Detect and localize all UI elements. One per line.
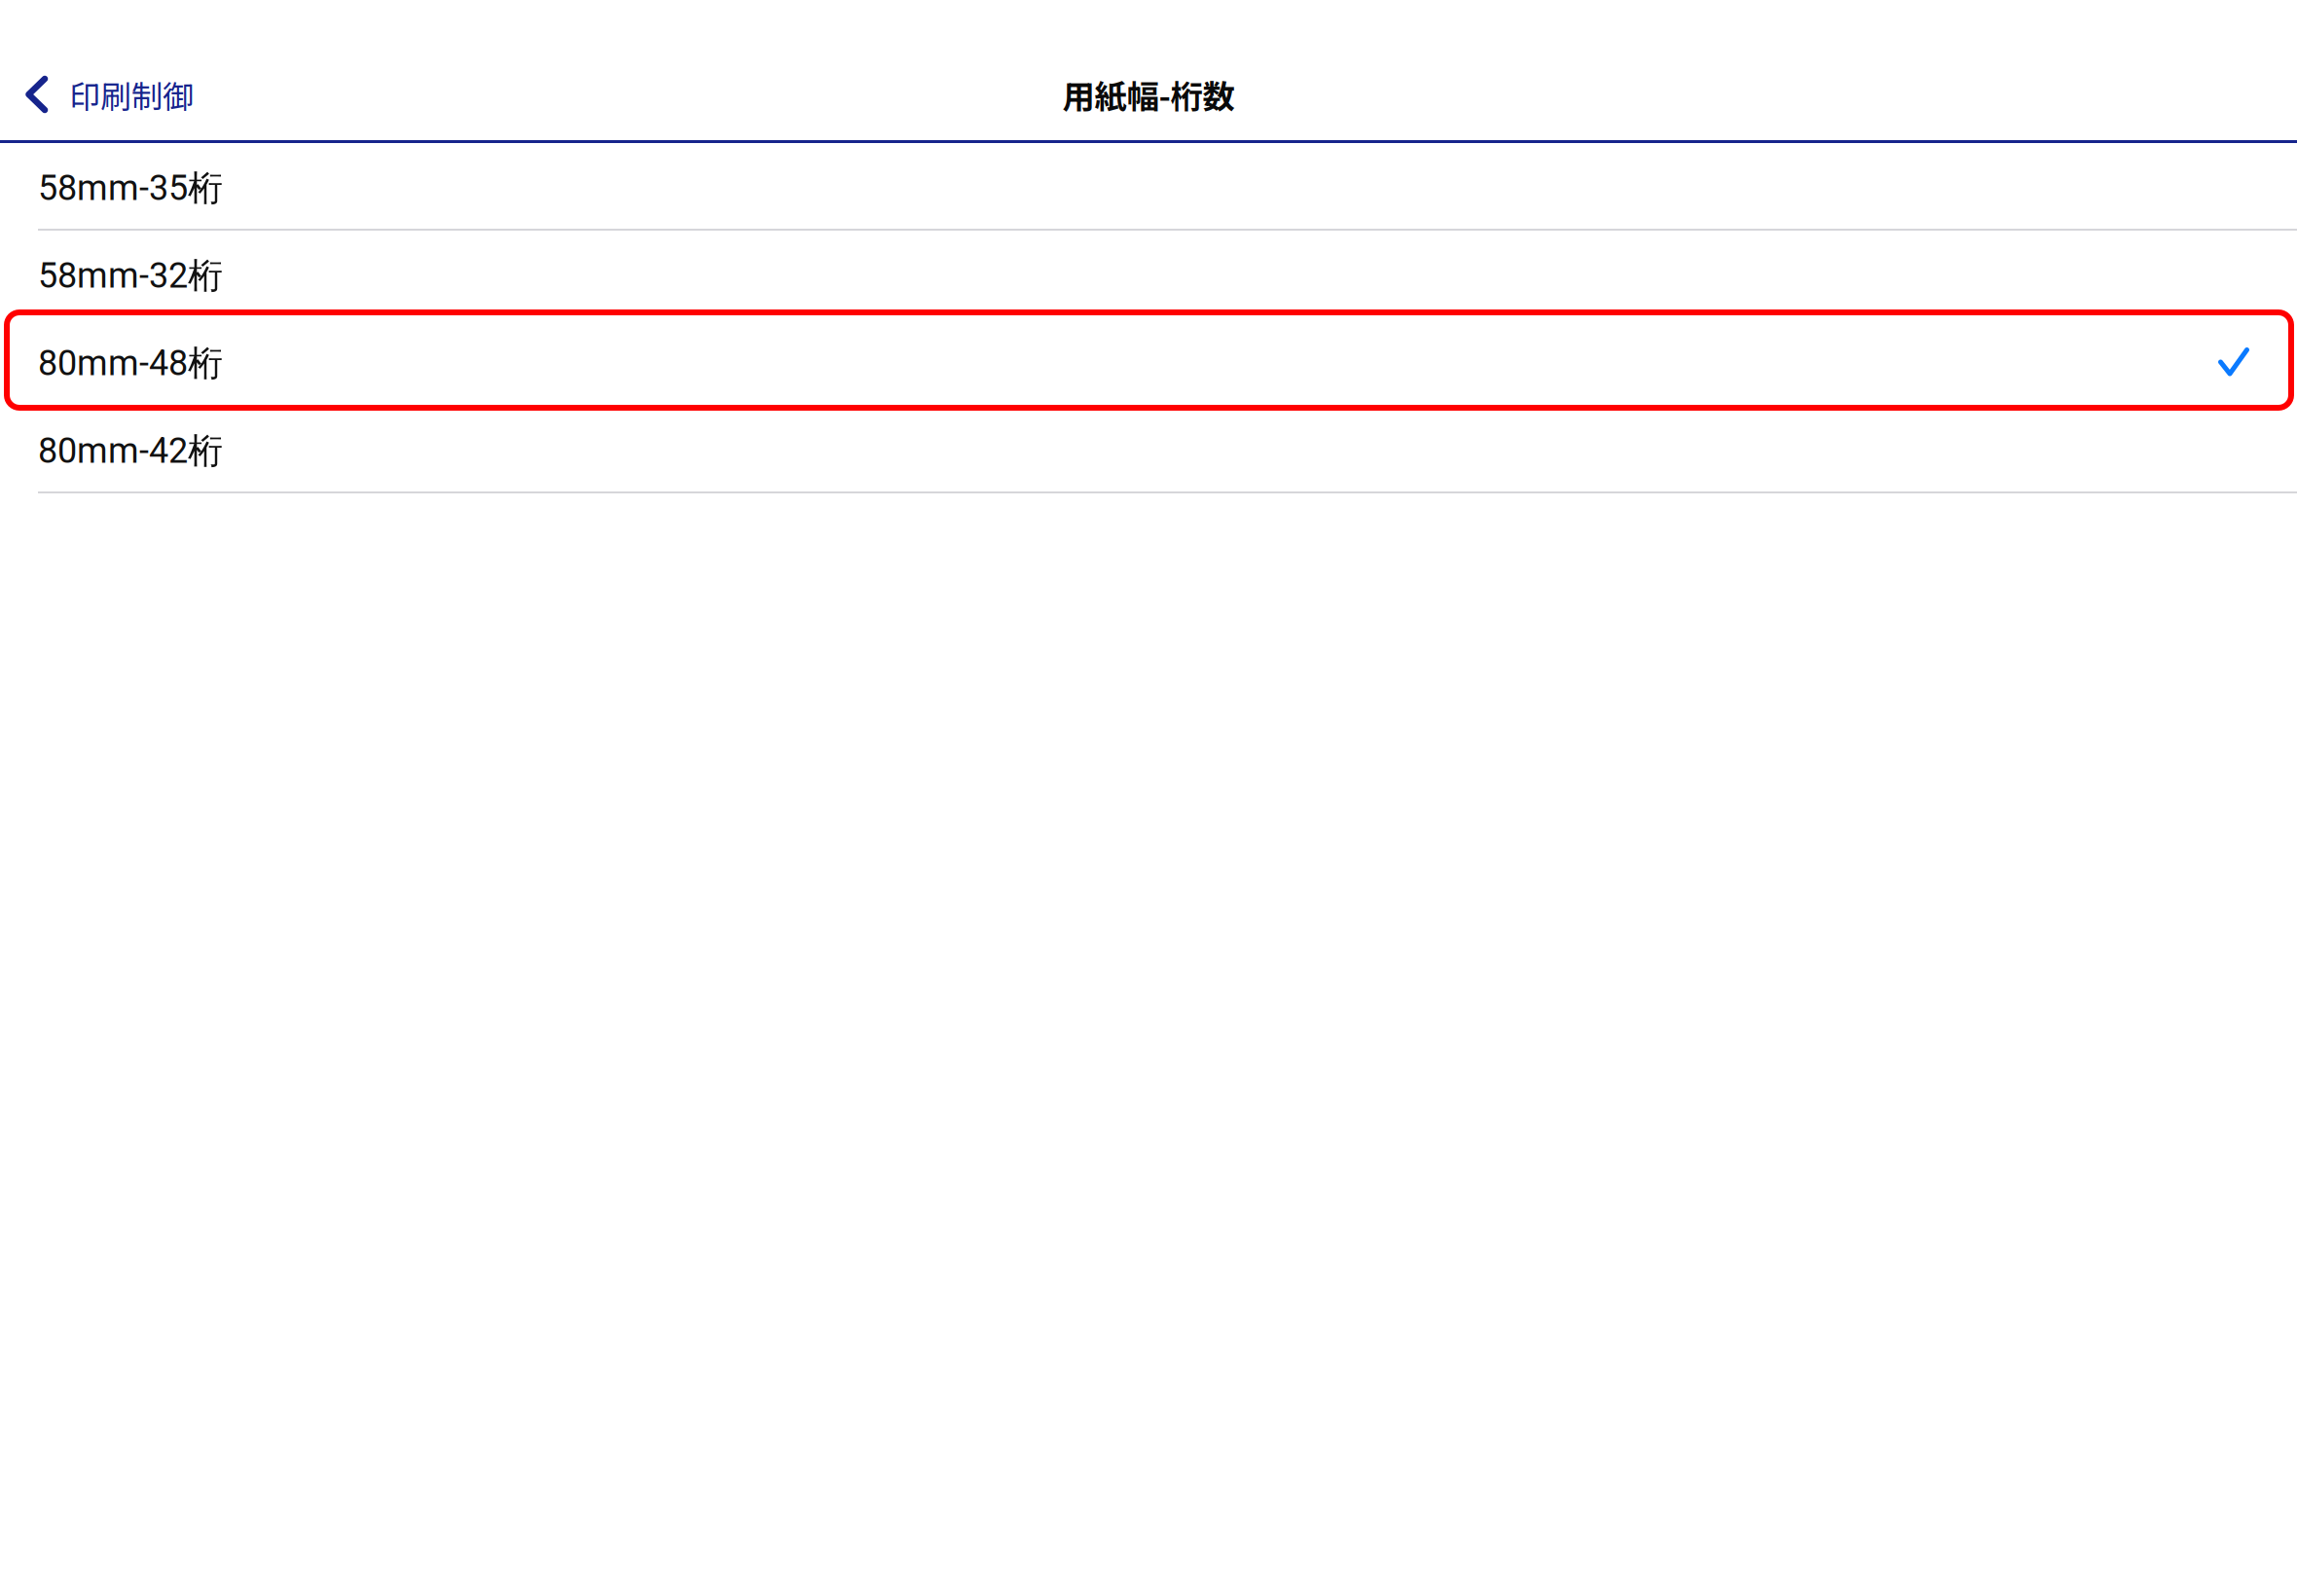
staticText: 58mm-35桁 [38,166,223,210]
button[interactable]: 58mm-32桁 [0,231,2297,316]
button[interactable]: 58mm-35桁 [0,143,2297,229]
staticText: 印刷制御 [69,72,194,117]
staticText: 80mm-48桁 [38,341,223,386]
button[interactable]: 印刷制御に戻る [0,49,217,140]
staticText: 80mm-42桁 [38,429,223,473]
staticText: 58mm-32桁 [38,254,223,298]
button[interactable]: 80mm-48桁 [0,318,2297,404]
staticText: 用紙幅-桁数 [1062,71,1235,118]
button[interactable]: 80mm-42桁 [0,406,2297,491]
